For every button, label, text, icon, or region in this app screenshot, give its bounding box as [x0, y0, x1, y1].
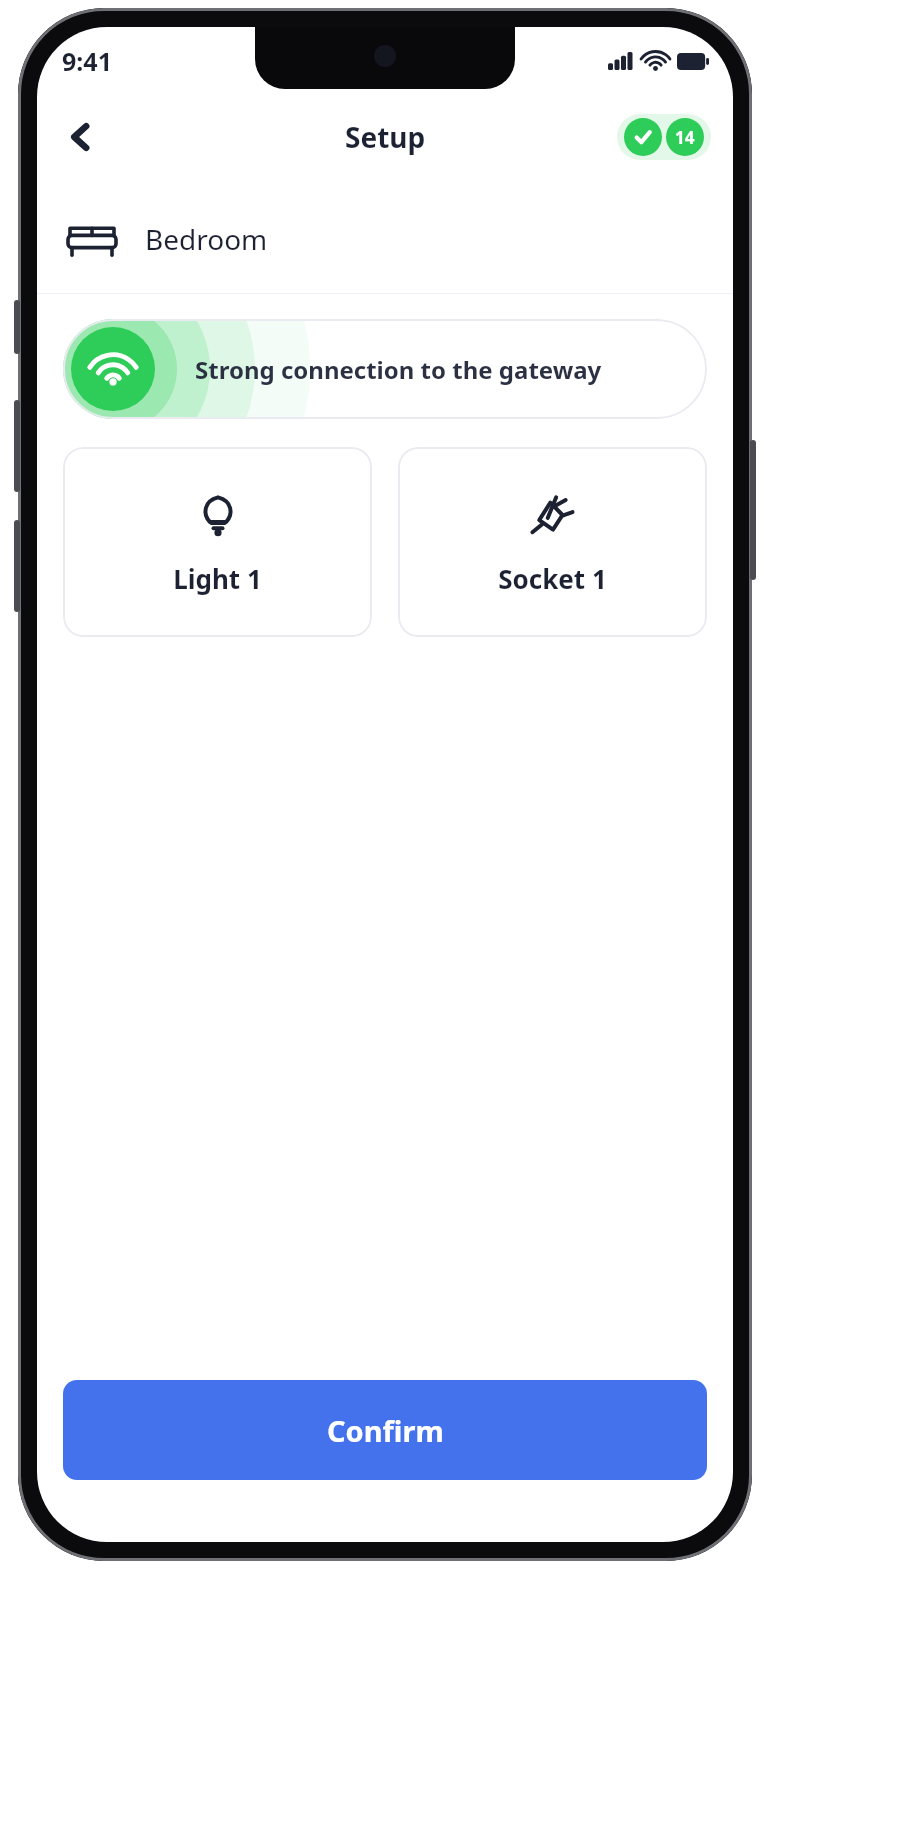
staticText: Confirm — [327, 1411, 444, 1450]
button[interactable]: Strong connection to the gateway — [63, 319, 707, 419]
staticText: Setup — [345, 118, 426, 156]
staticText: 14 — [675, 126, 695, 149]
staticText: Socket 1 — [498, 561, 607, 596]
button[interactable]: Socket 1 — [398, 447, 707, 637]
button[interactable]: Confirm — [63, 1380, 707, 1480]
button[interactable]: Bedroom — [37, 185, 733, 293]
staticText: 9:41 — [62, 44, 112, 78]
button[interactable]: Light 1 — [63, 447, 372, 637]
button[interactable]: Back — [49, 105, 113, 169]
staticText: Strong connection to the gateway — [195, 353, 602, 386]
staticText: Light 1 — [173, 561, 262, 596]
button[interactable]: 14 — [617, 114, 711, 160]
staticText: Bedroom — [145, 220, 268, 258]
